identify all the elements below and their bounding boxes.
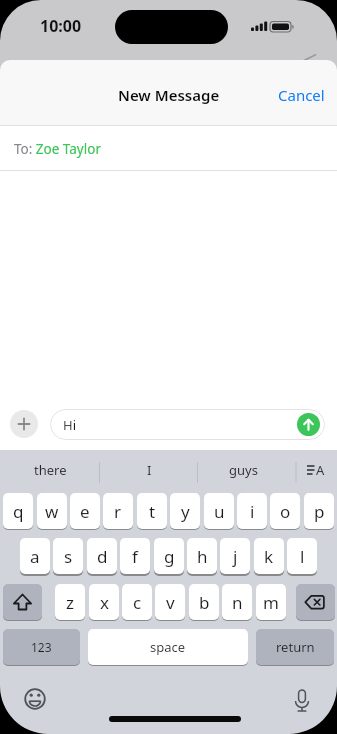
staticText: g xyxy=(164,545,175,568)
button[interactable]: To: Zoe Taylor xyxy=(0,126,337,170)
button[interactable]: w xyxy=(37,493,67,529)
button[interactable] xyxy=(296,584,335,620)
staticText: f xyxy=(132,545,138,568)
staticText: guys xyxy=(229,461,258,479)
button[interactable]: k xyxy=(254,538,284,574)
button[interactable]: z xyxy=(55,584,85,620)
button[interactable]: space xyxy=(88,629,248,665)
staticText: e xyxy=(80,500,90,523)
staticText: p xyxy=(314,500,325,523)
staticText: 123 xyxy=(31,639,52,655)
staticText: Hi xyxy=(63,416,76,434)
staticText: a xyxy=(30,545,40,568)
button[interactable]: a xyxy=(20,538,50,574)
staticText: w xyxy=(45,500,59,523)
staticText: space xyxy=(150,638,186,656)
button[interactable]: Cancel xyxy=(272,84,330,106)
button[interactable]: d xyxy=(87,538,117,574)
staticText: To: Zoe Taylor xyxy=(14,140,101,158)
button[interactable]: g xyxy=(154,538,184,574)
button[interactable]: y xyxy=(170,493,200,529)
staticText: A xyxy=(316,461,325,479)
button[interactable]: guys xyxy=(213,459,273,481)
button[interactable]: n xyxy=(222,584,252,620)
staticText: return xyxy=(276,638,315,656)
button[interactable]: e xyxy=(70,493,100,529)
staticText: q xyxy=(13,500,24,523)
staticText: s xyxy=(64,545,73,568)
staticText: u xyxy=(214,500,225,523)
staticText: k xyxy=(264,545,274,568)
button[interactable] xyxy=(3,584,42,620)
button[interactable] xyxy=(297,413,320,436)
button[interactable]: return xyxy=(256,629,334,665)
staticText: l xyxy=(300,545,305,568)
staticText: Cancel xyxy=(278,85,325,105)
staticText: i xyxy=(250,500,255,523)
button[interactable]: A xyxy=(312,459,328,481)
button[interactable]: I xyxy=(119,459,179,481)
staticText: y xyxy=(181,500,190,523)
staticText: r xyxy=(114,500,122,523)
staticText: z xyxy=(66,591,74,614)
button[interactable]: p xyxy=(304,493,334,529)
button[interactable]: s xyxy=(53,538,83,574)
button[interactable]: 123 xyxy=(3,629,80,665)
staticText: New Message xyxy=(118,85,220,105)
staticText: v xyxy=(166,591,175,614)
button[interactable]: r xyxy=(103,493,133,529)
staticText: I xyxy=(147,461,152,479)
staticText: m xyxy=(263,591,279,614)
button[interactable]: f xyxy=(120,538,150,574)
button[interactable]: j xyxy=(220,538,250,574)
staticText: c xyxy=(133,591,142,614)
button[interactable] xyxy=(288,686,316,714)
button[interactable]: b xyxy=(189,584,219,620)
staticText: o xyxy=(280,500,291,523)
button[interactable]: i xyxy=(237,493,267,529)
staticText: there xyxy=(34,461,67,479)
button[interactable] xyxy=(21,684,49,712)
staticText: j xyxy=(233,545,238,568)
button[interactable]: o xyxy=(270,493,300,529)
staticText: b xyxy=(199,591,210,614)
button[interactable] xyxy=(10,410,38,438)
button[interactable]: v xyxy=(155,584,185,620)
button[interactable]: Hi xyxy=(50,409,325,440)
staticText: 10:00 xyxy=(40,15,82,37)
button[interactable]: l xyxy=(287,538,317,574)
button[interactable]: h xyxy=(187,538,217,574)
staticText: h xyxy=(197,545,208,568)
button[interactable]: x xyxy=(89,584,119,620)
staticText: d xyxy=(97,545,108,568)
staticText: n xyxy=(232,591,243,614)
button[interactable]: m xyxy=(256,584,286,620)
button[interactable]: c xyxy=(122,584,152,620)
button[interactable]: t xyxy=(137,493,167,529)
staticText: t xyxy=(149,500,156,523)
staticText: x xyxy=(100,591,109,614)
button[interactable]: q xyxy=(3,493,33,529)
button[interactable]: u xyxy=(204,493,234,529)
button[interactable]: there xyxy=(18,459,82,481)
